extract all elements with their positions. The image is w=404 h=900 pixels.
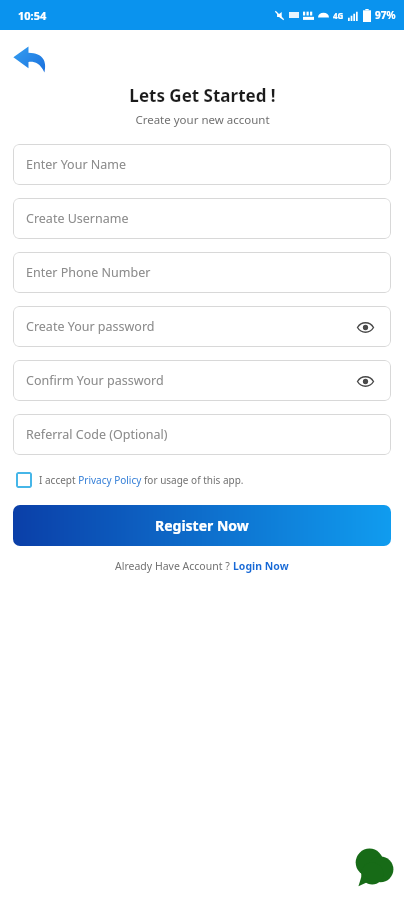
button[interactable]: Register Now	[13, 505, 391, 546]
button[interactable]: Create Your password	[13, 306, 391, 347]
button[interactable]: Confirm Your password	[13, 360, 391, 401]
staticText: Confirm Your password	[26, 372, 352, 389]
staticText: Enter Your Name	[26, 156, 378, 173]
staticText: Referral Code (Optional)	[26, 426, 378, 443]
staticText: Create Your password	[26, 318, 352, 335]
button[interactable]: Accept privacy policy	[16, 472, 388, 488]
button[interactable]: Create Username	[13, 198, 391, 239]
staticText: Lets Get Started !	[129, 84, 276, 107]
button[interactable]: Enter Your Name	[13, 144, 391, 185]
staticText: 4G	[333, 10, 344, 21]
staticText: Create your new account	[135, 112, 270, 128]
button[interactable]: Toggle password visibility	[352, 368, 378, 394]
staticText: 10:54	[18, 8, 47, 23]
button[interactable]: Back	[10, 38, 52, 80]
staticText: 97%	[375, 8, 396, 22]
button[interactable]: Chat support	[352, 844, 398, 890]
staticText: Login Now	[233, 559, 289, 573]
button[interactable]: Enter Phone Number	[13, 252, 391, 293]
staticText: Enter Phone Number	[26, 264, 378, 281]
button[interactable]: Toggle password visibility	[352, 314, 378, 340]
button[interactable]: Accept privacy policy	[16, 472, 32, 488]
button[interactable]: Login Now	[233, 559, 289, 573]
staticText: I accept Privacy Policy for usage of thi…	[39, 473, 244, 487]
staticText: Already Have Account ?	[115, 559, 233, 573]
staticText: Create Username	[26, 210, 378, 227]
button[interactable]: Referral Code (Optional)	[13, 414, 391, 455]
staticText: Register Now	[155, 516, 249, 535]
